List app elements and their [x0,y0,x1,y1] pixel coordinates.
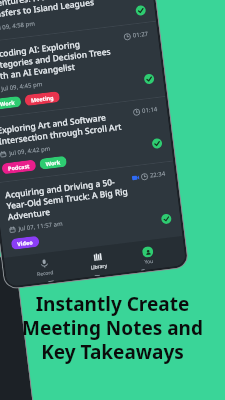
staticText: Meeting [30,94,54,103]
button[interactable]: Work [39,156,67,170]
button[interactable]: Record [29,256,60,280]
staticText: Podcast [8,162,30,172]
staticText: Library [90,262,108,271]
button[interactable]: Unusual Football Stories and Adventures:… [0,0,156,43]
button[interactable]: Account [135,244,161,268]
staticText: Jul 09, 4:45 pm [1,80,43,93]
button[interactable]: Decoding AI: Exploring Categories and De… [0,22,165,118]
staticText: You [144,258,154,266]
staticText: Exploring Art and Software Intersection … [0,109,131,147]
staticText: Unusual Football Stories and Adventures:… [0,0,108,21]
staticText: Jul 09, 4:58 pm [0,19,36,32]
other: Account [142,246,154,258]
staticText: 01:27 [132,30,149,40]
staticText: Acquiring and Driving a 50-Year-Old Semi… [4,174,132,222]
staticText: Jul 09, 4:42 pm [9,144,51,158]
staticText: Record [37,269,54,278]
button[interactable]: Meeting [24,91,60,106]
button[interactable]: Acquiring and Driving a 50-Year-Old Semi… [0,162,182,258]
staticText: Video [17,238,33,247]
staticText: Work [45,158,61,167]
button[interactable]: Exploring Art and Software Intersection … [0,97,173,183]
staticText: Work [0,98,15,107]
staticText: Decoding AI: Exploring Categories and De… [0,33,123,82]
staticText: Instantly Create Meeting Notes and Key T… [22,291,203,364]
staticText: 22:34 [149,170,166,179]
staticText: Jul 07, 11:57 am [18,219,64,233]
staticText: 01:14 [141,105,158,115]
button[interactable]: Work [0,96,21,110]
button[interactable]: Video [11,236,40,250]
button[interactable]: Podcast [1,159,36,174]
button[interactable]: Library [83,250,114,273]
